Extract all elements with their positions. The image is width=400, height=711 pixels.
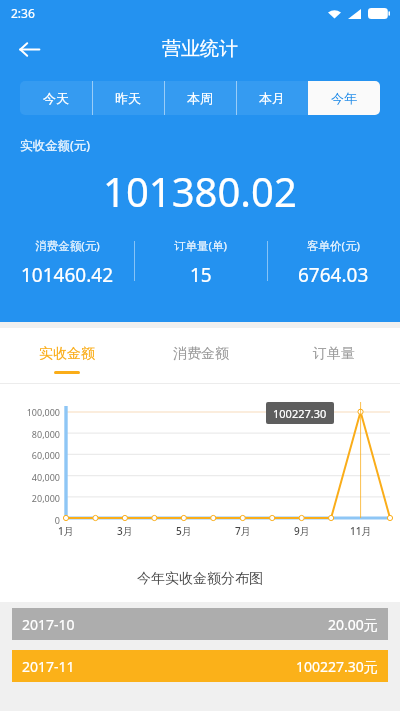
staticText: 营业统计: [162, 37, 238, 61]
staticText: 60,000: [31, 449, 60, 461]
button[interactable]: 今年: [308, 81, 380, 115]
staticText: 3月: [117, 524, 133, 538]
staticText: 2:36: [11, 5, 35, 21]
staticText: 实收金额(元): [20, 137, 91, 154]
staticText: 100,000: [26, 406, 60, 418]
staticText: 订单量: [313, 345, 355, 363]
button[interactable]: 实收金额: [0, 328, 134, 383]
button[interactable]: Back: [8, 28, 50, 70]
staticText: 101380.02: [103, 164, 297, 218]
button[interactable]: 本月: [236, 81, 308, 115]
staticText: 客单价(元): [307, 238, 360, 254]
button[interactable]: 2017-11: [12, 650, 388, 682]
staticText: 0: [54, 514, 60, 526]
staticText: 昨天: [115, 90, 141, 106]
staticText: 订单量(单): [174, 238, 227, 254]
staticText: 今天: [43, 90, 69, 106]
staticText: 消费金额: [173, 345, 229, 363]
staticText: 40,000: [31, 471, 60, 483]
staticText: 本周: [187, 90, 213, 106]
staticText: 7月: [235, 524, 251, 538]
staticText: 消费金额(元): [35, 238, 100, 254]
staticText: 2017-10: [22, 615, 75, 634]
button[interactable]: 本周: [164, 81, 236, 115]
staticText: 2017-11: [22, 657, 75, 676]
staticText: 本月: [259, 90, 285, 106]
staticText: 今年实收金额分布图: [137, 570, 263, 588]
staticText: 100227.30元: [296, 657, 378, 676]
button[interactable]: 2017-10: [12, 608, 388, 640]
staticText: 11月: [350, 524, 372, 538]
button[interactable]: 昨天: [92, 81, 164, 115]
staticText: 20,000: [31, 492, 60, 504]
button[interactable]: 消费金额: [134, 328, 267, 383]
staticText: 80,000: [31, 428, 60, 440]
staticText: 6764.03: [298, 262, 369, 288]
staticText: 15: [190, 262, 212, 288]
staticText: 1月: [58, 524, 74, 538]
staticText: 今年: [331, 90, 357, 106]
staticText: 实收金额: [39, 345, 95, 363]
staticText: 9月: [294, 524, 310, 538]
button[interactable]: 今天: [20, 81, 92, 115]
staticText: 20.00元: [328, 615, 378, 634]
staticText: 100227.30: [273, 406, 327, 421]
staticText: 5月: [176, 524, 192, 538]
staticText: 101460.42: [21, 262, 114, 288]
button[interactable]: 订单量: [267, 328, 400, 383]
